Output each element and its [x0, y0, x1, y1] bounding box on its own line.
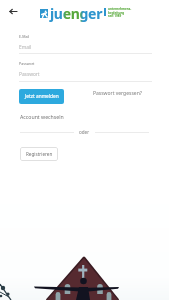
staticText: oder [79, 129, 90, 135]
button[interactable]: Registrieren [20, 147, 58, 161]
button[interactable]: Passwort vergessen? [93, 90, 142, 97]
staticText: Passwort [19, 71, 40, 78]
staticText: Passwort vergessen? [93, 90, 142, 97]
button[interactable]: Jetzt anmelden [19, 89, 64, 104]
button[interactable]: Account wechseln [20, 113, 64, 120]
button[interactable]: Back [3, 2, 22, 21]
staticText: Jetzt anmelden [25, 93, 59, 100]
staticText: E-Mail [19, 34, 30, 39]
staticText: Email [19, 44, 32, 51]
staticText: Account wechseln [20, 113, 64, 120]
staticText: unternehmens- begleitung seit 1989 [108, 7, 132, 17]
staticText: Passwort [19, 61, 35, 66]
staticText: Registrieren [26, 151, 53, 157]
staticText: juenger [50, 4, 103, 23]
